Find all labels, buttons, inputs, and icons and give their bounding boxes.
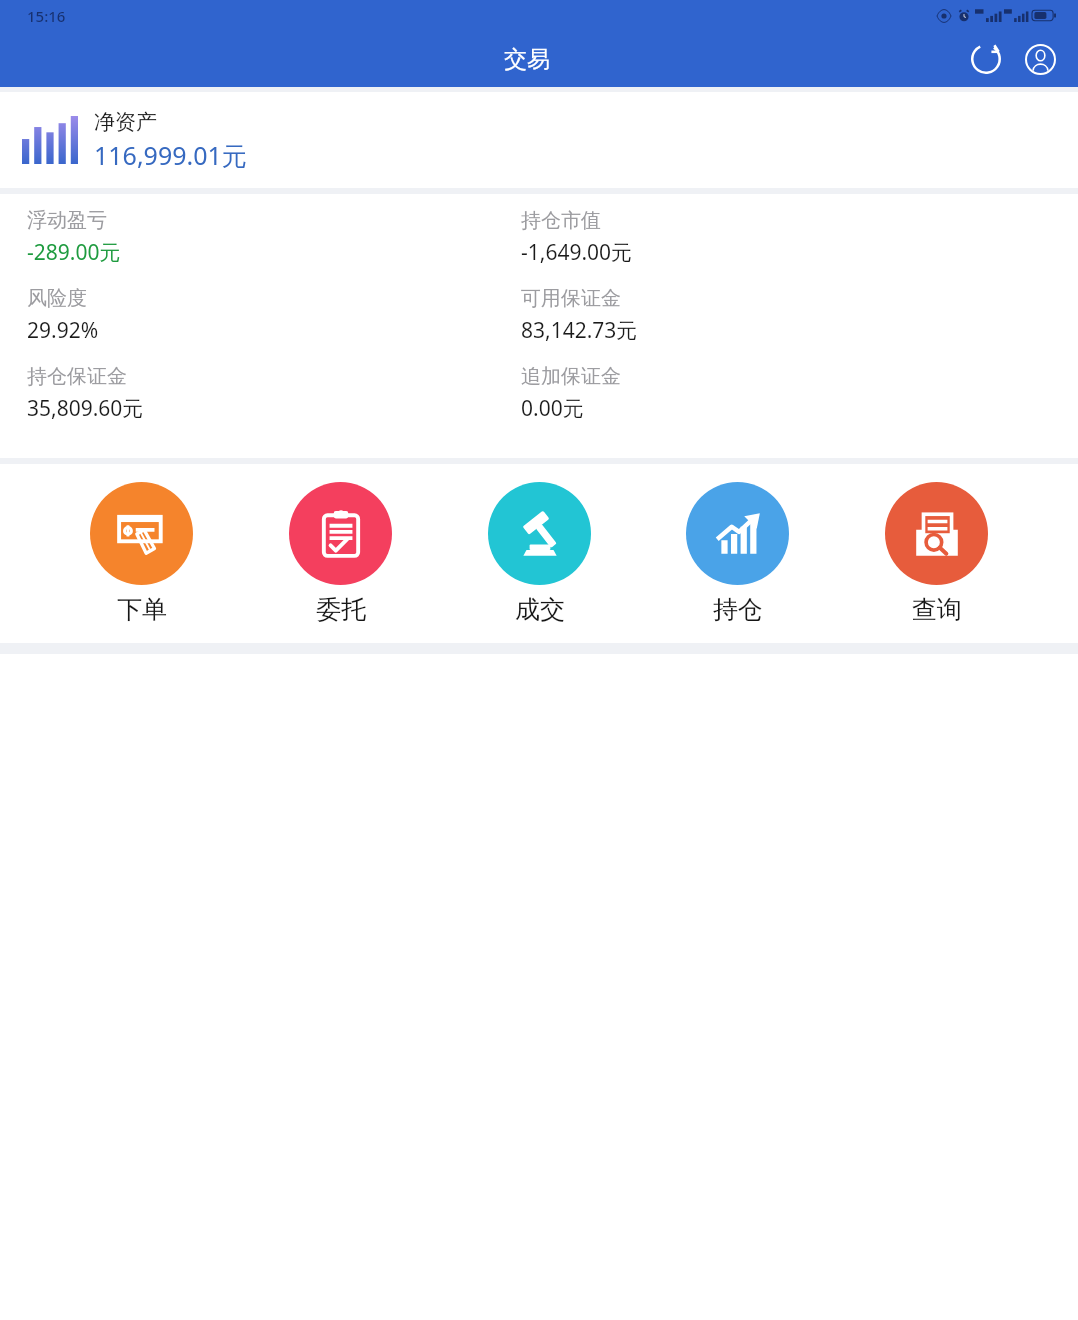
staticText: 风险度: [27, 286, 87, 311]
staticText: 可用保证金: [521, 286, 621, 311]
staticText: 净资产: [94, 109, 157, 135]
staticText: 浮动盈亏: [27, 208, 107, 233]
staticText: 35,809.60元: [27, 394, 144, 423]
button[interactable]: 持仓: [680, 482, 795, 625]
button[interactable]: Account: [1016, 35, 1064, 83]
button[interactable]: 查询: [879, 482, 994, 625]
staticText: 追加保证金: [521, 364, 621, 389]
staticText: 持仓市值: [521, 208, 601, 233]
staticText: 0.00元: [521, 394, 584, 423]
button[interactable]: 成交: [482, 482, 597, 625]
staticText: 116,999.01元: [94, 138, 247, 172]
staticText: 查询: [912, 594, 962, 625]
staticText: 委托: [316, 594, 366, 625]
staticText: -289.00元: [27, 238, 121, 267]
staticText: 15:16: [27, 6, 66, 26]
button[interactable]: 净资产: [0, 92, 1078, 188]
button[interactable]: Refresh: [962, 35, 1010, 83]
button[interactable]: 下单: [84, 482, 199, 625]
staticText: 持仓保证金: [27, 364, 127, 389]
staticText: 交易: [504, 45, 550, 74]
staticText: 持仓: [713, 594, 763, 625]
staticText: -1,649.00元: [521, 238, 633, 267]
staticText: 下单: [117, 594, 167, 625]
staticText: 成交: [515, 594, 565, 625]
button[interactable]: 委托: [283, 482, 398, 625]
staticText: 29.92%: [27, 316, 99, 345]
staticText: 83,142.73元: [521, 316, 638, 345]
